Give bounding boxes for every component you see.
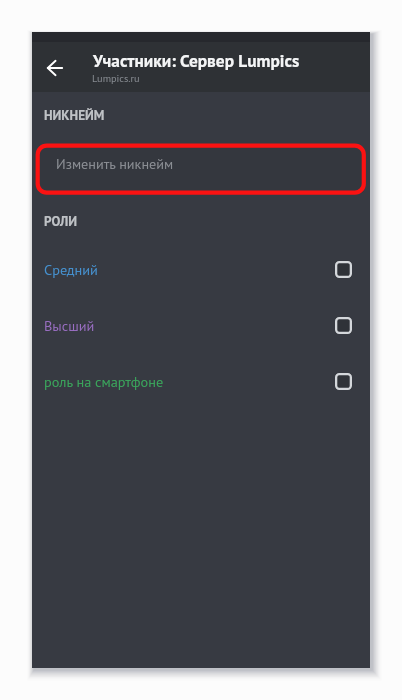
staticText: Средний [44, 260, 98, 279]
staticText: Изменить никнейм [56, 155, 174, 173]
button[interactable]: Средний [32, 241, 370, 297]
staticText: РОЛИ [44, 213, 78, 230]
button[interactable]: Высший [32, 297, 370, 353]
button[interactable]: роль на смартфоне [32, 353, 370, 409]
button[interactable]: Изменить никнейм [38, 146, 365, 194]
staticText: Высший [44, 316, 95, 335]
staticText: Участники: Сервер Lumpics [93, 49, 300, 71]
staticText: Lumpics.ru [92, 72, 140, 85]
button[interactable]: Back [36, 49, 73, 86]
staticText: НИКНЕЙМ [44, 107, 105, 124]
staticText: роль на смартфоне [44, 372, 164, 391]
